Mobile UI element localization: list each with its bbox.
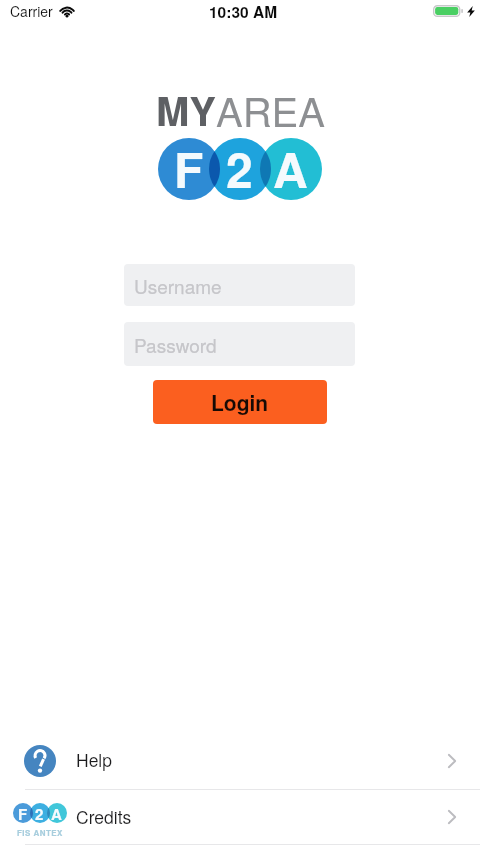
staticText: 2: [35, 803, 44, 823]
button[interactable]: Password: [124, 322, 355, 366]
button[interactable]: F: [0, 790, 480, 844]
staticText: A: [273, 134, 308, 203]
other: Help: [24, 745, 56, 777]
staticText: Help: [76, 747, 112, 772]
staticText: Credits: [76, 804, 132, 829]
staticText: Login: [211, 387, 269, 417]
other: Open: [448, 810, 456, 824]
staticText: MY: [156, 81, 216, 138]
staticText: Password: [134, 331, 217, 358]
staticText: 10:30 AM: [209, 1, 278, 23]
other: Open: [448, 754, 456, 768]
staticText: F: [174, 134, 204, 203]
staticText: Carrier: [10, 1, 53, 21]
button[interactable]: Username: [124, 264, 355, 306]
staticText: F: [18, 803, 28, 823]
staticText: Username: [134, 272, 222, 299]
button[interactable]: Help: [0, 732, 480, 789]
button[interactable]: Login: [153, 380, 327, 424]
staticText: FIS ANTEX: [17, 827, 63, 838]
staticText: 2: [226, 134, 253, 203]
staticText: A: [51, 803, 62, 823]
staticText: AREA: [216, 81, 325, 138]
